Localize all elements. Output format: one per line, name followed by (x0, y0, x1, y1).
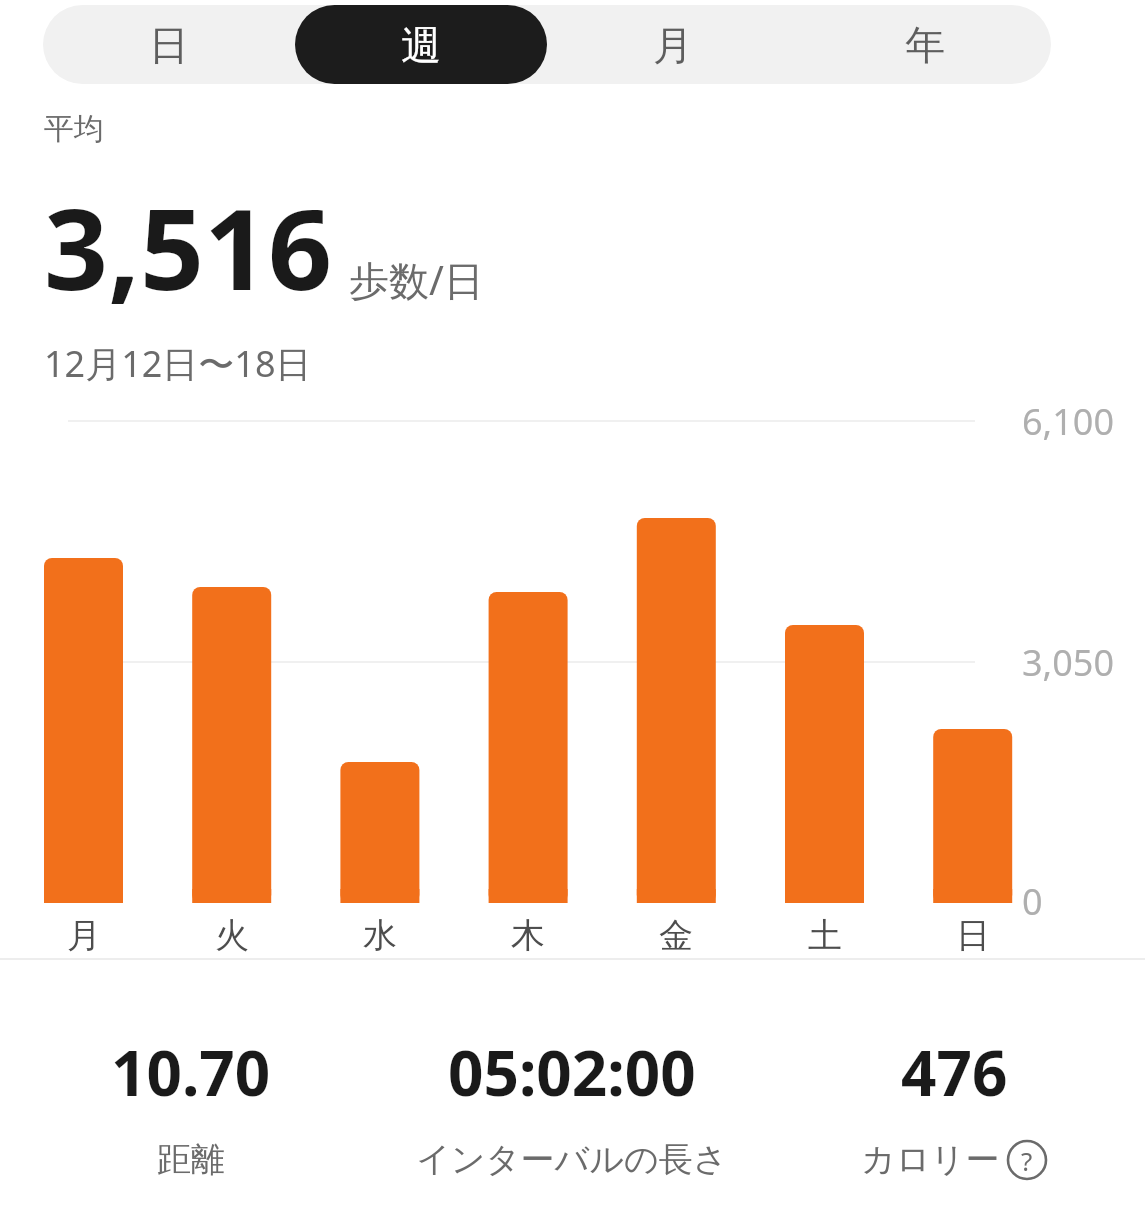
button[interactable]: 月 (547, 5, 799, 84)
staticText: 日 (149, 20, 189, 70)
staticText: 週 (401, 20, 441, 70)
staticText: 平均 (44, 110, 104, 148)
button[interactable]: 日 (43, 5, 295, 84)
staticText: 12月12日〜18日 (44, 339, 312, 388)
staticText: 月 (653, 20, 693, 70)
staticText: 0 (1022, 877, 1043, 926)
staticText: 距離 (157, 1138, 225, 1181)
staticText: 6,100 (1022, 397, 1115, 446)
button[interactable]: 476 (763, 1030, 1145, 1181)
staticText: 歩数/日 (349, 252, 484, 307)
staticText: 05:02:00 (448, 1030, 696, 1114)
button[interactable]: カロリーについて (1006, 1139, 1048, 1181)
staticText: 476 (901, 1030, 1008, 1114)
staticText: 水 (363, 914, 397, 957)
button[interactable]: 週 (295, 5, 547, 84)
button[interactable]: 年 (799, 5, 1051, 84)
staticText: インターバルの長さ (416, 1138, 728, 1181)
staticText: 10.70 (111, 1030, 271, 1114)
staticText: ? (1021, 1143, 1033, 1178)
staticText: 木 (511, 914, 545, 957)
button[interactable]: 10.70 (0, 1030, 381, 1181)
staticText: 金 (659, 914, 693, 957)
staticText: カロリー (861, 1138, 1000, 1181)
staticText: 年 (905, 20, 945, 70)
staticText: 土 (808, 914, 842, 957)
staticText: 日 (956, 914, 990, 957)
staticText: 3,516 (44, 170, 333, 323)
staticText: 3,050 (1022, 638, 1115, 687)
button[interactable]: 05:02:00 (381, 1030, 763, 1181)
staticText: 火 (215, 914, 249, 957)
staticText: 月 (67, 914, 101, 957)
